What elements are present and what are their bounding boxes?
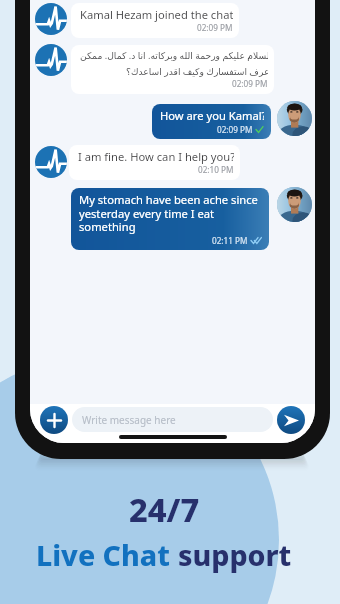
staticText: 24/7 xyxy=(129,487,200,531)
staticText: Live Chat xyxy=(36,536,178,575)
staticText: 02:09 PM xyxy=(197,22,233,33)
button[interactable]: السلام عليكم ورحمة الله وبركاته. انا د. … xyxy=(71,45,274,94)
staticText: 02:09 PM xyxy=(217,124,253,135)
staticText: Write message here xyxy=(82,413,176,427)
button[interactable]: How are you Kamal? xyxy=(152,104,271,139)
button[interactable]: Add attachment xyxy=(40,406,68,434)
staticText: Kamal Hezam joined the chat xyxy=(80,7,233,22)
staticText: I am fine. How can I help you? xyxy=(78,149,234,164)
staticText: My stomach have been ache since yesterda… xyxy=(79,192,262,234)
button[interactable]: Send xyxy=(277,406,305,434)
button[interactable]: Support agent xyxy=(35,3,67,35)
staticText: 02:11 PM xyxy=(212,235,248,246)
button[interactable]: Support agent xyxy=(35,146,67,178)
button[interactable]: Kamal Hezam joined the chat xyxy=(71,3,239,38)
staticText: How are you Kamal? xyxy=(160,108,264,123)
button[interactable]: Your profile picture xyxy=(277,187,312,222)
button[interactable]: Write message here xyxy=(72,407,273,432)
button[interactable]: Your profile picture xyxy=(277,101,312,136)
button[interactable]: Support agent xyxy=(35,44,67,76)
staticText: 02:10 PM xyxy=(198,164,234,175)
staticText: support xyxy=(178,536,292,575)
staticText: السلام عليكم ورحمة الله وبركاته. انا د. … xyxy=(80,49,268,78)
button[interactable]: My stomach have been ache since yesterda… xyxy=(71,188,269,250)
staticText: 02:09 PM xyxy=(232,78,268,89)
button[interactable]: I am fine. How can I help you? xyxy=(69,145,240,180)
